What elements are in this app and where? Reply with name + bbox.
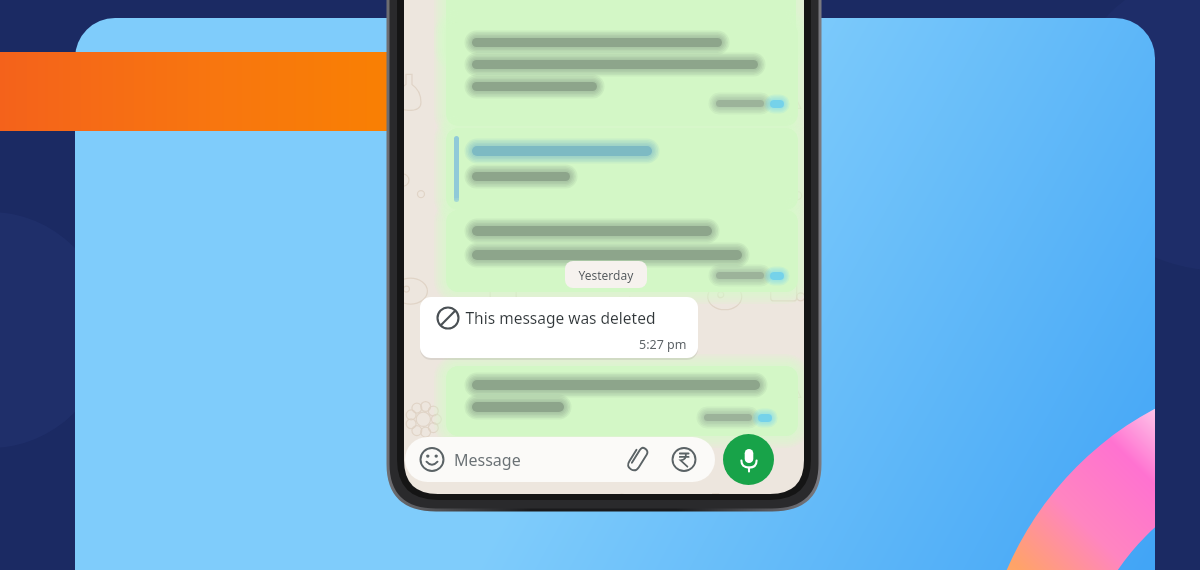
button[interactable]: Record voice message — [723, 434, 774, 485]
button[interactable] — [405, 437, 715, 482]
